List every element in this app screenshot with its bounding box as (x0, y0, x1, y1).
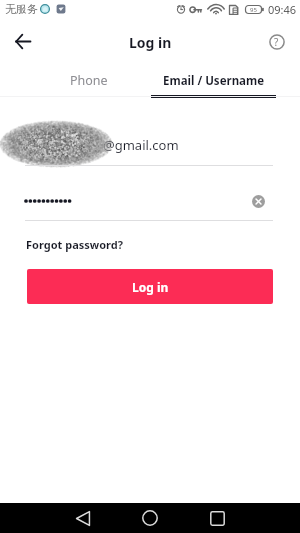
staticText: 09:46 (268, 2, 297, 17)
staticText: Forgot password? (26, 237, 123, 252)
button[interactable]: Email / Username (151, 68, 276, 98)
button[interactable]: Forgot password? (26, 236, 123, 252)
staticText: Log in (129, 33, 172, 52)
staticText: 95 (250, 6, 257, 14)
staticText: Log in (132, 279, 169, 295)
button[interactable]: Phone (62, 67, 115, 93)
staticText: Phone (70, 72, 108, 89)
staticText: @gmail.com (103, 136, 179, 154)
button[interactable]: Help (261, 26, 292, 57)
button[interactable]: Back (70, 505, 96, 531)
staticText: ? (274, 35, 279, 49)
staticText: Email / Username (163, 73, 265, 89)
button[interactable]: Clear text (246, 189, 270, 213)
button[interactable]: Log in (27, 269, 273, 304)
button[interactable]: Back (7, 25, 39, 57)
staticText: 无服务 (5, 2, 38, 16)
button[interactable]: Recent apps (204, 505, 230, 531)
button[interactable]: Home (137, 505, 163, 531)
